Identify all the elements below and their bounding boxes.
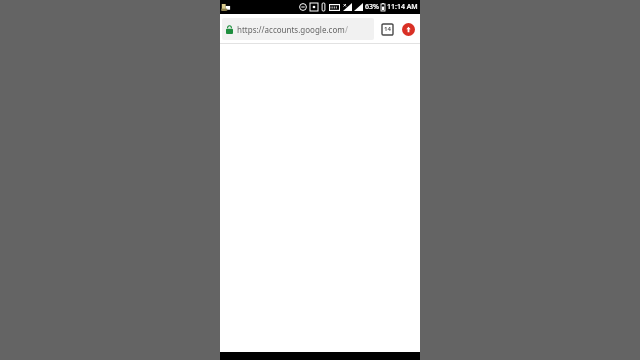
staticText: 63%: [365, 2, 379, 12]
staticText: /signin/c: [345, 24, 370, 35]
staticText: https://accounts.google.com: [237, 24, 345, 35]
button[interactable]: https://accounts.google.com: [222, 18, 374, 40]
staticText: 11:14 AM: [387, 2, 418, 12]
button[interactable]: Switch tabs, 14 open tabs: [379, 21, 395, 37]
button[interactable]: Stop screen recording: [399, 20, 417, 38]
staticText: 14: [384, 25, 391, 33]
